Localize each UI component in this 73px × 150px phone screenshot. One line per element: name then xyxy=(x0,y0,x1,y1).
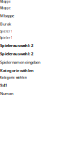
staticText: Spielernamen eingeben xyxy=(0,59,40,65)
staticText: Spieler 1 xyxy=(0,36,13,40)
staticText: Burak xyxy=(0,21,11,27)
staticText: Spielerauswahl: 2 xyxy=(0,51,33,56)
staticText: Spieler 1 xyxy=(0,30,13,33)
staticText: Kategorie wählen xyxy=(0,68,34,73)
staticText: 9:41 xyxy=(0,83,7,88)
staticText: Spielerauswahl: 2 xyxy=(0,43,33,48)
staticText: Mbappe xyxy=(0,0,11,3)
staticText: Mbappe xyxy=(0,13,14,18)
staticText: Numan xyxy=(0,91,13,96)
staticText: Kategorie wählen xyxy=(0,76,27,79)
staticText: Mbappe xyxy=(0,6,11,10)
